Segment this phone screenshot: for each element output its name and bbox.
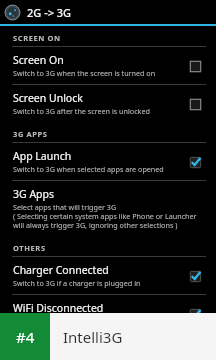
- button[interactable]: App Launch: [0, 143, 216, 180]
- staticText: Intelli3G: [63, 327, 123, 347]
- staticText: Screen On: [13, 53, 64, 67]
- staticText: Screen Unlock: [13, 91, 83, 105]
- button[interactable]: Screen Unlock: [184, 93, 206, 115]
- staticText: SCREEN ON: [13, 33, 61, 43]
- staticText: #4: [16, 327, 35, 347]
- staticText: Switch to 3G if WiFi is disconnected: [13, 316, 132, 326]
- staticText: Switch to 3G after the screen is unlocke…: [13, 106, 150, 116]
- staticText: Select apps that will trigger 3G ( Selec…: [13, 202, 206, 230]
- staticText: OTHERS: [13, 243, 46, 253]
- button[interactable]: Screen On: [184, 55, 206, 77]
- button[interactable]: Charger Connected: [0, 257, 216, 294]
- staticText: Switch to 3G if a charger is plugged in: [13, 278, 141, 288]
- staticText: 2G -> 3G: [27, 5, 72, 20]
- button[interactable]: 3G Apps: [0, 181, 216, 236]
- button[interactable]: WiFi Disconnected: [184, 303, 206, 325]
- button[interactable]: Charger Connected: [184, 265, 206, 287]
- staticText: Charger Connected: [13, 263, 109, 277]
- button[interactable]: Screen Unlock: [0, 85, 216, 122]
- staticText: Switch to 3G when the screen is turned o…: [13, 68, 156, 78]
- staticText: 3G APPS: [13, 129, 48, 139]
- staticText: 3G Apps: [13, 187, 55, 201]
- button[interactable]: 2G -> 3G: [0, 0, 216, 24]
- staticText: Switch to 3G when selected apps are open…: [13, 164, 164, 174]
- button[interactable]: Screen On: [0, 47, 216, 84]
- button[interactable]: App Launch: [184, 151, 206, 173]
- button[interactable]: WiFi Disconnected: [0, 295, 216, 332]
- staticText: App Launch: [13, 149, 72, 163]
- staticText: WiFi Disconnected: [13, 301, 104, 315]
